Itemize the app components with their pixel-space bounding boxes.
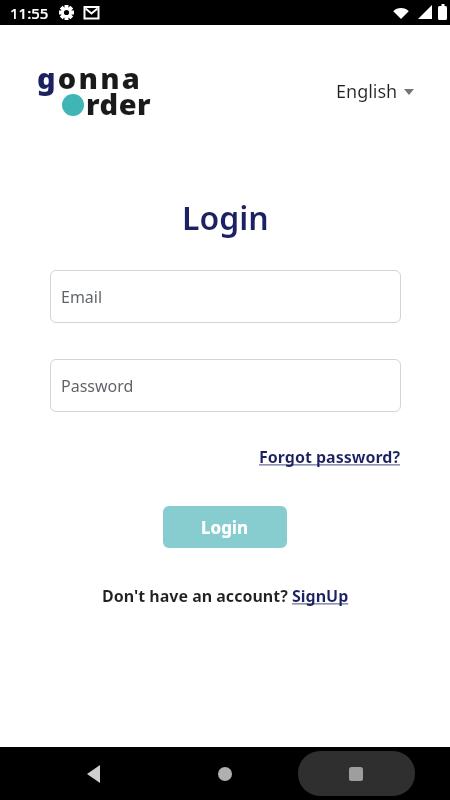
button[interactable] [342, 760, 370, 788]
staticText: Login [201, 516, 249, 539]
button[interactable] [211, 760, 239, 788]
button[interactable] [80, 760, 108, 788]
staticText: rder [86, 84, 152, 123]
staticText: Don't have an account? [102, 585, 292, 607]
button[interactable]: English [336, 79, 414, 104]
staticText: Email [61, 286, 103, 308]
staticText: English [336, 79, 398, 104]
button[interactable]: Login [163, 506, 287, 548]
staticText: Password [61, 375, 134, 397]
staticText: Login [182, 196, 269, 240]
button[interactable]: Password [50, 359, 401, 412]
button[interactable]: Email [50, 270, 401, 323]
button[interactable]: Forgot password? [259, 446, 401, 468]
button[interactable]: SignUp [292, 585, 349, 607]
staticText: 11:55 [10, 3, 49, 23]
staticText: gonna [37, 58, 143, 97]
